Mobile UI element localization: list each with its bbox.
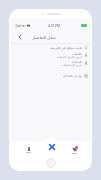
staticText: 4:21 PM — [47, 24, 60, 28]
staticText: سجل التفاصيل — [32, 35, 56, 40]
staticText: عرض كل العمليات — [61, 63, 82, 67]
button[interactable]: Back — [15, 31, 24, 43]
staticText: تحديد موقع على الخريطة — [50, 46, 82, 50]
staticText: عرض تفاصيل الحساب — [57, 55, 82, 59]
button[interactable]: الحساب — [15, 51, 88, 59]
staticText: الحساب — [72, 52, 82, 55]
button[interactable]: العمليات — [15, 59, 88, 67]
button[interactable]: Profile — [22, 144, 34, 156]
staticText: تواصل معنا الآن — [62, 74, 82, 78]
button[interactable]: تواصل معنا الآن — [15, 72, 88, 80]
staticText: العمليات — [71, 60, 82, 63]
button[interactable]: Cart — [68, 144, 80, 156]
button[interactable]: Add — [46, 141, 57, 152]
button[interactable]: تحديد موقع على الخريطة — [15, 44, 88, 51]
staticText: Carrier — [15, 24, 26, 28]
